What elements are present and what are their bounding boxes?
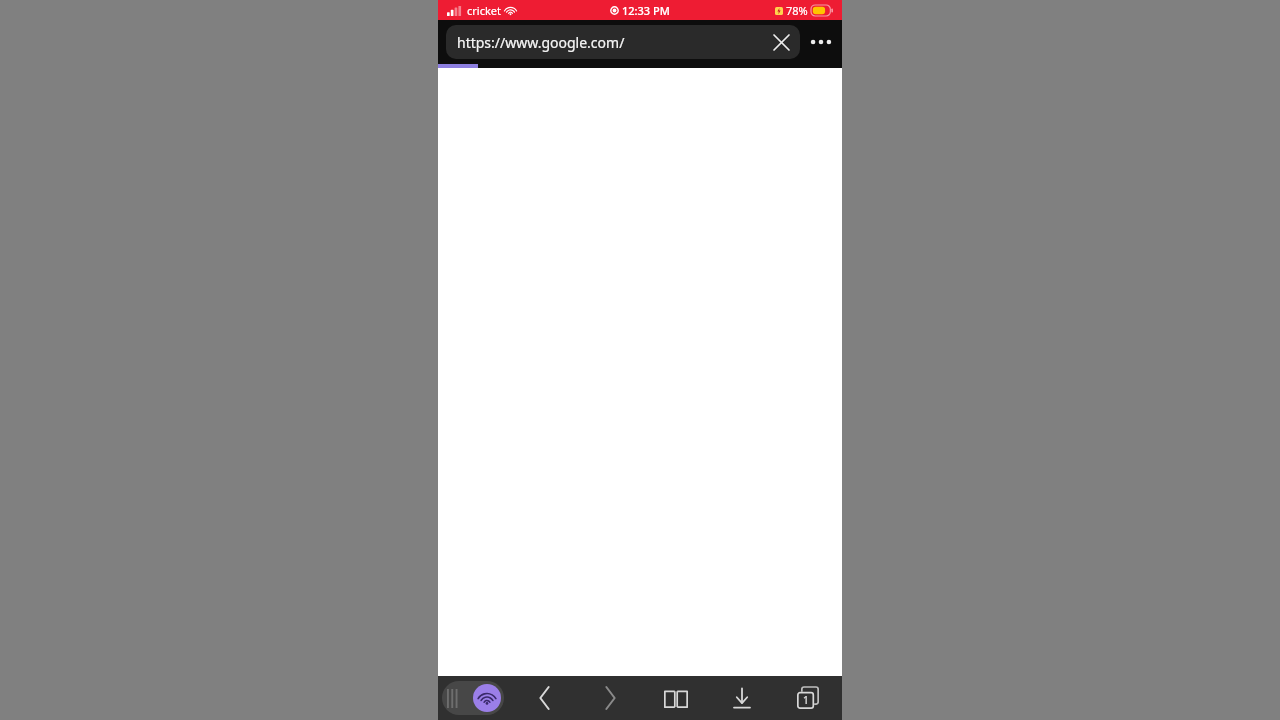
button[interactable]: Tabs — [787, 677, 829, 719]
staticText: cricket — [467, 3, 501, 18]
button[interactable]: https://www.google.com/ — [446, 25, 800, 59]
staticText: https://www.google.com/ — [457, 33, 764, 52]
staticText: 78% — [786, 3, 808, 18]
staticText: 12:33 PM — [622, 3, 670, 18]
button[interactable]: Back — [523, 677, 565, 719]
button[interactable]: Stop loading — [764, 25, 798, 59]
button[interactable]: Downloads — [721, 677, 763, 719]
staticText: 1 — [803, 693, 809, 707]
button[interactable]: VPN status — [442, 681, 504, 715]
button[interactable]: Forward — [589, 677, 631, 719]
button[interactable]: Bookmarks — [655, 677, 697, 719]
button[interactable]: More options — [800, 20, 842, 64]
